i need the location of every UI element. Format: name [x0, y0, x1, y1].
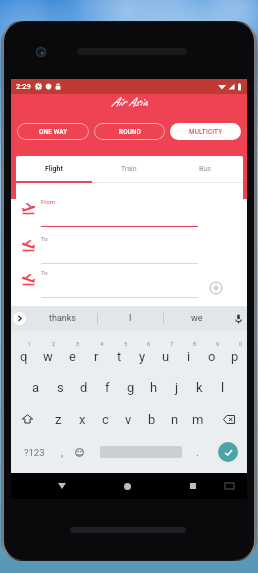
- staticText: ?123: [24, 447, 45, 458]
- staticText: ROUND: [119, 128, 141, 135]
- staticText: 9: [216, 341, 220, 347]
- button[interactable]: Voice input: [229, 306, 247, 331]
- button[interactable]: 0: [223, 340, 246, 368]
- staticText: Bus: [199, 165, 211, 173]
- staticText: 7: [170, 341, 174, 347]
- staticText: 2: [52, 341, 56, 347]
- button[interactable]: l: [211, 373, 234, 401]
- button[interactable]: x: [70, 405, 94, 433]
- staticText: m: [192, 412, 204, 427]
- staticText: i: [187, 349, 191, 364]
- staticText: .: [196, 446, 199, 459]
- staticText: c: [102, 412, 109, 427]
- staticText: 5: [124, 341, 128, 347]
- staticText: 2:29: [16, 82, 31, 91]
- button[interactable]: 2: [36, 340, 60, 368]
- staticText: o: [208, 349, 216, 364]
- staticText: 6: [147, 341, 151, 347]
- button[interactable]: f: [96, 373, 119, 401]
- staticText: 8: [193, 341, 197, 347]
- staticText: ONE WAY: [39, 128, 68, 135]
- button[interactable]: thanks: [27, 306, 97, 331]
- button[interactable]: ,: [53, 438, 71, 466]
- button[interactable]: c: [94, 405, 117, 433]
- staticText: q: [20, 349, 28, 364]
- button[interactable]: Back: [51, 475, 73, 497]
- staticText: l: [221, 380, 225, 395]
- staticText: b: [148, 412, 156, 427]
- button[interactable]: Bus: [167, 156, 243, 182]
- staticText: we: [191, 313, 203, 324]
- staticText: x: [79, 412, 86, 427]
- staticText: From: [41, 198, 55, 205]
- button[interactable]: ROUND: [94, 123, 165, 140]
- button[interactable]: 4: [84, 340, 108, 368]
- button[interactable]: 5: [108, 340, 131, 368]
- staticText: d: [80, 380, 88, 395]
- button[interactable]: .: [188, 438, 206, 466]
- button[interactable]: 9: [200, 340, 223, 368]
- button[interactable]: m: [186, 405, 209, 433]
- button[interactable]: v: [117, 405, 140, 433]
- staticText: f: [105, 380, 110, 395]
- button[interactable]: Hide keyboard: [218, 475, 240, 497]
- staticText: r: [94, 349, 99, 364]
- button[interactable]: g: [119, 373, 142, 401]
- staticText: z: [55, 412, 62, 427]
- button[interactable]: Enter: [218, 442, 238, 462]
- staticText: e: [69, 349, 76, 364]
- staticText: Air Asia: [111, 94, 147, 110]
- staticText: k: [196, 380, 203, 395]
- button[interactable]: 6: [131, 340, 154, 368]
- button[interactable]: Shift: [14, 405, 40, 433]
- staticText: thanks: [49, 313, 76, 324]
- button[interactable]: j: [165, 373, 188, 401]
- button[interactable]: we: [164, 306, 229, 331]
- staticText: 0: [239, 341, 243, 347]
- button[interactable]: s: [48, 373, 72, 401]
- staticText: t: [117, 349, 122, 364]
- button[interactable]: ONE WAY: [17, 123, 89, 140]
- button[interactable]: Train: [91, 156, 167, 182]
- staticText: 1: [28, 341, 32, 347]
- staticText: h: [150, 380, 158, 395]
- staticText: p: [231, 349, 239, 364]
- staticText: j: [175, 380, 179, 395]
- button[interactable]: Home: [116, 475, 138, 497]
- button[interactable]: Emoji: [71, 438, 88, 466]
- staticText: n: [171, 412, 179, 427]
- button[interactable]: b: [140, 405, 163, 433]
- staticText: MULTICITY: [189, 128, 223, 135]
- button[interactable]: 1: [12, 340, 36, 368]
- button[interactable]: ?123: [17, 438, 51, 466]
- button[interactable]: 3: [60, 340, 84, 368]
- button[interactable]: 8: [177, 340, 200, 368]
- staticText: v: [125, 412, 132, 427]
- button[interactable]: d: [72, 373, 96, 401]
- staticText: Train: [121, 165, 137, 173]
- button[interactable]: a: [24, 373, 48, 401]
- button[interactable]: MULTICITY: [170, 123, 241, 140]
- staticText: 4: [100, 341, 104, 347]
- staticText: To: [41, 235, 48, 242]
- staticText: y: [139, 349, 146, 364]
- button[interactable]: k: [188, 373, 211, 401]
- button[interactable]: n: [163, 405, 186, 433]
- button[interactable]: Flight: [16, 156, 91, 182]
- button[interactable]: 7: [154, 340, 177, 368]
- staticText: u: [162, 349, 170, 364]
- staticText: 3: [76, 341, 80, 347]
- button[interactable]: Backspace: [216, 405, 242, 433]
- staticText: g: [127, 380, 135, 395]
- staticText: a: [32, 380, 40, 395]
- staticText: ,: [61, 446, 64, 459]
- button[interactable]: I: [98, 306, 163, 331]
- button[interactable]: h: [142, 373, 165, 401]
- staticText: s: [57, 380, 64, 395]
- staticText: Flight: [45, 165, 63, 173]
- button[interactable]: z: [46, 405, 70, 433]
- button[interactable]: Expand suggestions: [11, 306, 27, 331]
- button[interactable]: Add destination: [209, 281, 223, 295]
- button[interactable]: Recents: [182, 475, 204, 497]
